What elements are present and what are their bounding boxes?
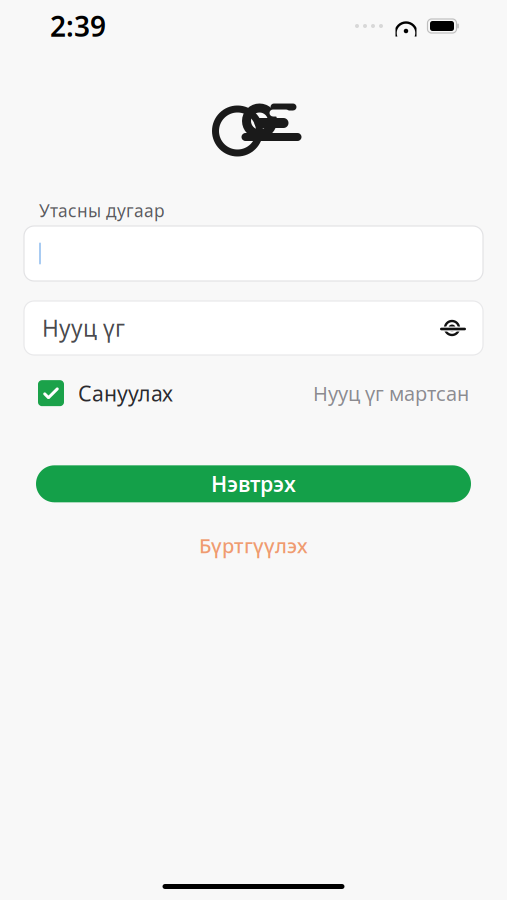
button[interactable]: Нууц үг мартсан bbox=[313, 374, 469, 412]
staticText: Нууц үг bbox=[42, 313, 125, 343]
staticText: Бүртгүүлэх bbox=[199, 532, 308, 559]
button[interactable]: Бүртгүүлэх bbox=[187, 526, 320, 565]
button[interactable]: Сануулах bbox=[38, 373, 173, 413]
button[interactable]: Нууц үг bbox=[24, 301, 483, 355]
staticText: Нэвтрэх bbox=[211, 470, 296, 498]
staticText: 2:39 bbox=[50, 7, 106, 45]
button[interactable]: Нэвтрэх bbox=[36, 465, 471, 502]
staticText: Сануулах bbox=[78, 379, 173, 407]
staticText: Нууц үг мартсан bbox=[313, 380, 469, 406]
button[interactable]: Утасны дугаар bbox=[24, 226, 483, 281]
staticText: Утасны дугаар bbox=[39, 199, 165, 222]
